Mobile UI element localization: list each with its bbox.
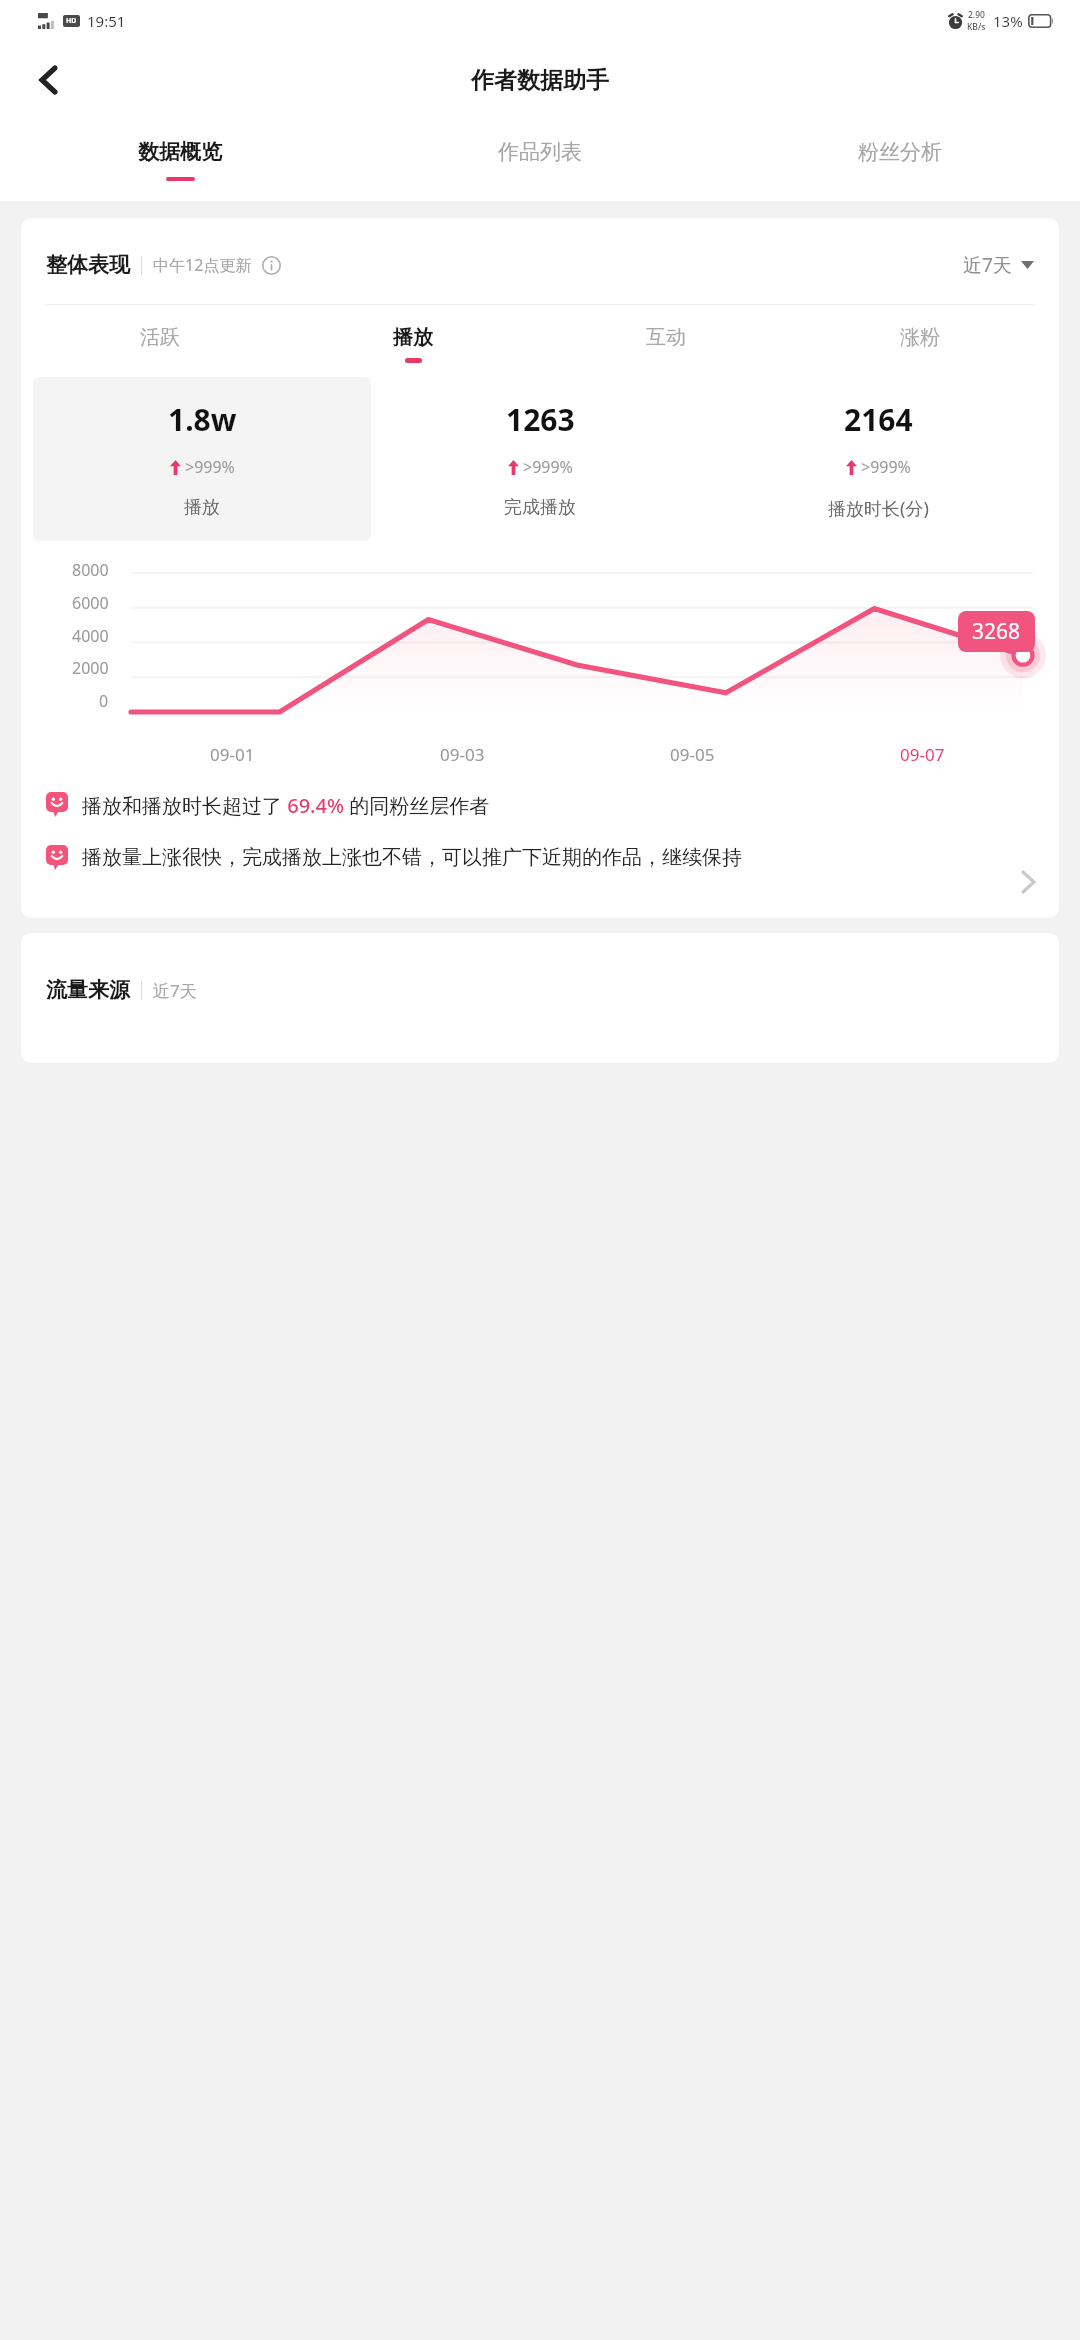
staticText: 流量来源 [46,977,130,1003]
button[interactable]: 互动 [539,325,793,363]
staticText: 09-03 [440,743,485,766]
staticText: 涨粉 [900,325,940,350]
button[interactable]: 粉丝分析 [720,119,1080,201]
staticText: >999% [861,456,911,478]
staticText: 播放 [184,496,220,519]
staticText: 4000 [72,625,109,647]
staticText: 13% [993,11,1023,31]
staticText: 2000 [72,657,109,679]
staticText: 09-07 [900,743,945,766]
staticText: 完成播放 [504,496,576,519]
button[interactable]: Info [260,254,283,277]
staticText: 作者数据助手 [471,66,609,95]
staticText: 6000 [72,592,109,614]
staticText: 播放和播放时长超过了 69.4% 的同粉丝层作者 [82,792,490,819]
button[interactable]: 1263 [371,377,709,541]
button[interactable]: 近7天 [963,252,1034,278]
staticText: >999% [185,456,235,478]
button[interactable]: 数据概览 [0,119,360,201]
staticText: 1263 [506,399,575,440]
staticText: 播放量上涨很快，完成播放上涨也不错，可以推广下近期的作品，继续保持 [82,845,742,870]
staticText: 中午12点更新 [153,254,252,276]
button[interactable]: Back [22,54,74,106]
staticText: 作品列表 [498,139,582,165]
staticText: 3268 [972,617,1021,646]
staticText: 近7天 [963,252,1012,278]
button[interactable]: 2164 [709,377,1047,543]
button[interactable]: 涨粉 [793,325,1047,363]
button[interactable]: 作品列表 [360,119,720,201]
staticText: 2.90 [968,9,985,21]
button[interactable]: 1.8w [33,377,371,541]
staticText: 8000 [72,559,109,581]
staticText: 近7天 [153,979,197,1002]
staticText: 09-05 [670,743,715,766]
staticText: 播放时长(分) [828,496,929,521]
staticText: 播放 [393,325,433,350]
staticText: 2164 [844,399,913,440]
staticText: 粉丝分析 [858,139,942,165]
button[interactable]: 播放量上涨很快，完成播放上涨也不错，可以推广下近期的作品，继续保持 [46,845,1034,870]
staticText: 19:51 [87,11,126,31]
staticText: 整体表现 [46,252,130,278]
staticText: 互动 [646,325,686,350]
button[interactable]: 播放和播放时长超过了 69.4% 的同粉丝层作者 [46,792,1034,819]
staticText: HD [66,16,77,26]
staticText: 0 [99,690,109,712]
staticText: >999% [523,456,573,478]
staticText: 09-01 [210,743,255,766]
staticText: 活跃 [140,325,180,350]
button[interactable]: 活跃 [33,325,286,363]
button[interactable]: 播放 [286,325,539,363]
staticText: 数据概览 [138,139,222,165]
staticText: 1.8w [168,399,237,440]
staticText: KB/s [967,21,986,33]
